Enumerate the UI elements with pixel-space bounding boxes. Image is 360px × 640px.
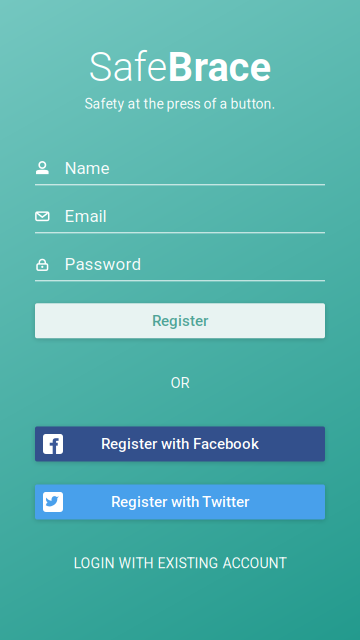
staticText: Password bbox=[65, 254, 142, 274]
staticText: Brace bbox=[167, 44, 271, 91]
staticText: OR bbox=[170, 374, 189, 391]
button[interactable]: Email bbox=[35, 197, 325, 233]
staticText: Safety at the press of a button. bbox=[84, 96, 275, 112]
button[interactable]: Password bbox=[35, 245, 325, 281]
staticText: Email bbox=[65, 206, 107, 226]
staticText: Name bbox=[65, 158, 110, 178]
button[interactable]: Register with Twitter bbox=[35, 484, 325, 519]
staticText: Safe bbox=[88, 44, 167, 91]
button[interactable]: Register with Facebook bbox=[35, 426, 325, 461]
staticText: Register with Twitter bbox=[111, 493, 249, 511]
staticText: Register bbox=[152, 312, 208, 330]
staticText: Register with Facebook bbox=[101, 435, 259, 453]
button[interactable]: LOGIN WITH EXISTING ACCOUNT bbox=[35, 552, 325, 574]
button[interactable]: Name bbox=[35, 149, 325, 185]
button[interactable]: Register bbox=[35, 303, 325, 338]
staticText: LOGIN WITH EXISTING ACCOUNT bbox=[73, 555, 286, 572]
